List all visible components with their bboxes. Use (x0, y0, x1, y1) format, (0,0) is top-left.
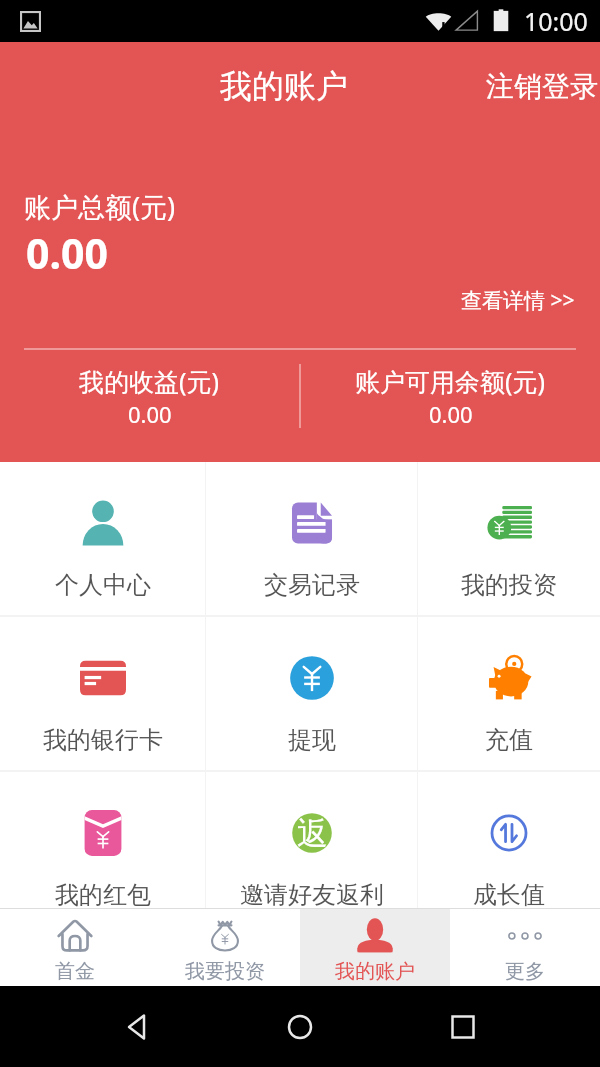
staticText: 邀请好友返利 (240, 880, 384, 908)
staticText: 我的投资 (461, 570, 557, 600)
staticText: 更多 (505, 959, 545, 984)
staticText: 10:00 (524, 4, 588, 38)
staticText: 0.00 (128, 399, 172, 428)
button[interactable]: 提现 (206, 617, 417, 770)
button[interactable]: 我的红包 (0, 772, 205, 908)
button[interactable]: 账户可用余额(元) (301, 364, 600, 428)
button[interactable]: 我的投资 (418, 462, 600, 615)
button[interactable]: 充值 (418, 617, 600, 770)
button[interactable]: 我的账户 (300, 909, 450, 986)
staticText: 0.00 (429, 399, 473, 428)
button[interactable]: 交易记录 (206, 462, 417, 615)
button[interactable]: 返 (206, 772, 417, 908)
button[interactable]: 注销登录 (470, 59, 600, 114)
staticText: 账户总额(元) (24, 188, 176, 225)
staticText: 我的收益(元) (79, 364, 220, 398)
staticText: 注销登录 (486, 69, 598, 104)
staticText: 查看详情 >> (461, 286, 575, 315)
button[interactable]: 查看详情 >> (441, 280, 600, 321)
staticText: 个人中心 (55, 570, 151, 600)
staticText: 我的账户 (220, 66, 348, 106)
button[interactable]: 我的收益(元) (0, 364, 299, 428)
staticText: 首金 (55, 959, 95, 984)
staticText: 我的银行卡 (43, 725, 163, 755)
staticText: 返 (297, 814, 328, 853)
staticText: 0.00 (26, 225, 108, 281)
button[interactable]: 更多 (450, 909, 600, 986)
staticText: 账户可用余额(元) (355, 364, 546, 398)
button[interactable]: Recents (438, 1002, 488, 1052)
button[interactable]: 个人中心 (0, 462, 205, 615)
staticText: 交易记录 (264, 570, 360, 600)
button[interactable]: Back (113, 1002, 163, 1052)
button[interactable]: 我的银行卡 (0, 617, 205, 770)
button[interactable]: 首金 (0, 909, 150, 986)
staticText: 我的账户 (335, 959, 415, 984)
staticText: 我的红包 (55, 880, 151, 908)
staticText: 我要投资 (185, 959, 265, 984)
staticText: 提现 (288, 725, 336, 755)
button[interactable]: 成长值 (418, 772, 600, 908)
button[interactable]: Home (275, 1002, 325, 1052)
staticText: 成长值 (473, 880, 545, 908)
staticText: 充值 (485, 725, 533, 755)
button[interactable]: 我要投资 (150, 909, 300, 986)
